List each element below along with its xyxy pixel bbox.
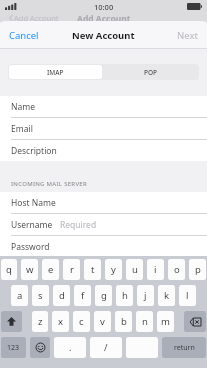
button[interactable]: a: [11, 285, 28, 306]
button[interactable]: m: [157, 311, 174, 332]
button[interactable]: Space: [126, 337, 158, 358]
button[interactable]: v: [94, 311, 111, 332]
button[interactable]: c: [73, 311, 90, 332]
staticText: h: [122, 289, 128, 302]
staticText: p: [195, 263, 201, 276]
button[interactable]: z: [32, 311, 48, 332]
staticText: l: [186, 289, 189, 302]
button[interactable]: x: [52, 311, 69, 332]
button[interactable]: i: [147, 259, 164, 280]
staticText: Cancel: [9, 29, 39, 42]
staticText: Email: [11, 123, 33, 135]
button[interactable]: u: [126, 259, 143, 280]
staticText: j: [144, 289, 147, 302]
staticText: e: [48, 263, 54, 276]
staticText: f: [81, 289, 85, 302]
staticText: n: [142, 315, 148, 328]
button[interactable]: h: [116, 285, 133, 306]
staticText: d: [59, 289, 65, 302]
button[interactable]: r: [63, 259, 80, 280]
button[interactable]: /: [90, 337, 122, 358]
staticText: New Account: [72, 29, 135, 42]
button[interactable]: j: [137, 285, 154, 306]
staticText: z: [38, 315, 43, 328]
button[interactable]: .: [54, 337, 86, 358]
staticText: Name: [11, 101, 35, 113]
button[interactable]: IMAP: [9, 65, 102, 79]
staticText: /: [104, 341, 108, 354]
button[interactable]: 123: [1, 337, 26, 358]
staticText: u: [132, 263, 138, 276]
button[interactable]: y: [105, 259, 122, 280]
staticText: Next: [177, 29, 198, 42]
staticText: 10:00: [94, 2, 114, 12]
staticText: return: [174, 343, 195, 353]
staticText: s: [38, 289, 43, 302]
button[interactable]: o: [168, 259, 185, 280]
staticText: c: [79, 315, 84, 328]
staticText: Password: [11, 241, 50, 253]
staticText: v: [100, 315, 105, 328]
staticText: t: [91, 263, 95, 276]
button[interactable]: s: [32, 285, 49, 306]
button[interactable]: l: [179, 285, 196, 306]
staticText: Host Name: [11, 197, 56, 209]
button[interactable]: n: [136, 311, 153, 332]
button[interactable]: Shift: [1, 311, 22, 332]
staticText: g: [101, 289, 107, 302]
staticText: y: [111, 263, 116, 276]
button[interactable]: Host Name: [0, 192, 207, 214]
staticText: k: [164, 289, 170, 302]
staticText: Add Account: [14, 13, 59, 22]
button[interactable]: Emoji: [30, 337, 50, 358]
staticText: r: [70, 263, 74, 276]
button[interactable]: p: [189, 259, 206, 280]
staticText: q: [6, 263, 12, 276]
button[interactable]: Backspace: [184, 311, 206, 332]
button[interactable]: q: [1, 259, 17, 280]
staticText: x: [58, 315, 64, 328]
button[interactable]: t: [84, 259, 101, 280]
button[interactable]: Description: [0, 140, 207, 161]
button[interactable]: w: [21, 259, 38, 280]
staticText: INCOMING MAIL SERVER: [11, 180, 87, 188]
staticText: m: [161, 315, 170, 328]
staticText: o: [174, 263, 180, 276]
button[interactable]: k: [158, 285, 175, 306]
button[interactable]: d: [53, 285, 70, 306]
staticText: a: [17, 289, 23, 302]
button[interactable]: b: [115, 311, 132, 332]
button[interactable]: Password: [0, 236, 207, 257]
staticText: i: [154, 263, 157, 276]
button[interactable]: f: [74, 285, 91, 306]
staticText: Username: [11, 219, 53, 231]
staticText: Add Account: [77, 13, 131, 22]
button[interactable]: POP: [103, 64, 199, 80]
button[interactable]: e: [42, 259, 59, 280]
button[interactable]: Username: [0, 214, 207, 236]
staticText: 123: [7, 343, 20, 353]
button[interactable]: g: [95, 285, 112, 306]
button[interactable]: Next: [168, 22, 207, 49]
staticText: Description: [11, 145, 57, 157]
button[interactable]: return: [162, 337, 206, 358]
staticText: POP: [144, 68, 158, 77]
staticText: .: [69, 341, 72, 354]
staticText: w: [26, 263, 34, 276]
button[interactable]: Cancel: [0, 22, 48, 49]
button[interactable]: Email: [0, 118, 207, 140]
staticText: Required: [60, 219, 97, 231]
staticText: IMAP: [47, 68, 64, 77]
staticText: b: [121, 315, 127, 328]
button[interactable]: Name: [0, 96, 207, 118]
